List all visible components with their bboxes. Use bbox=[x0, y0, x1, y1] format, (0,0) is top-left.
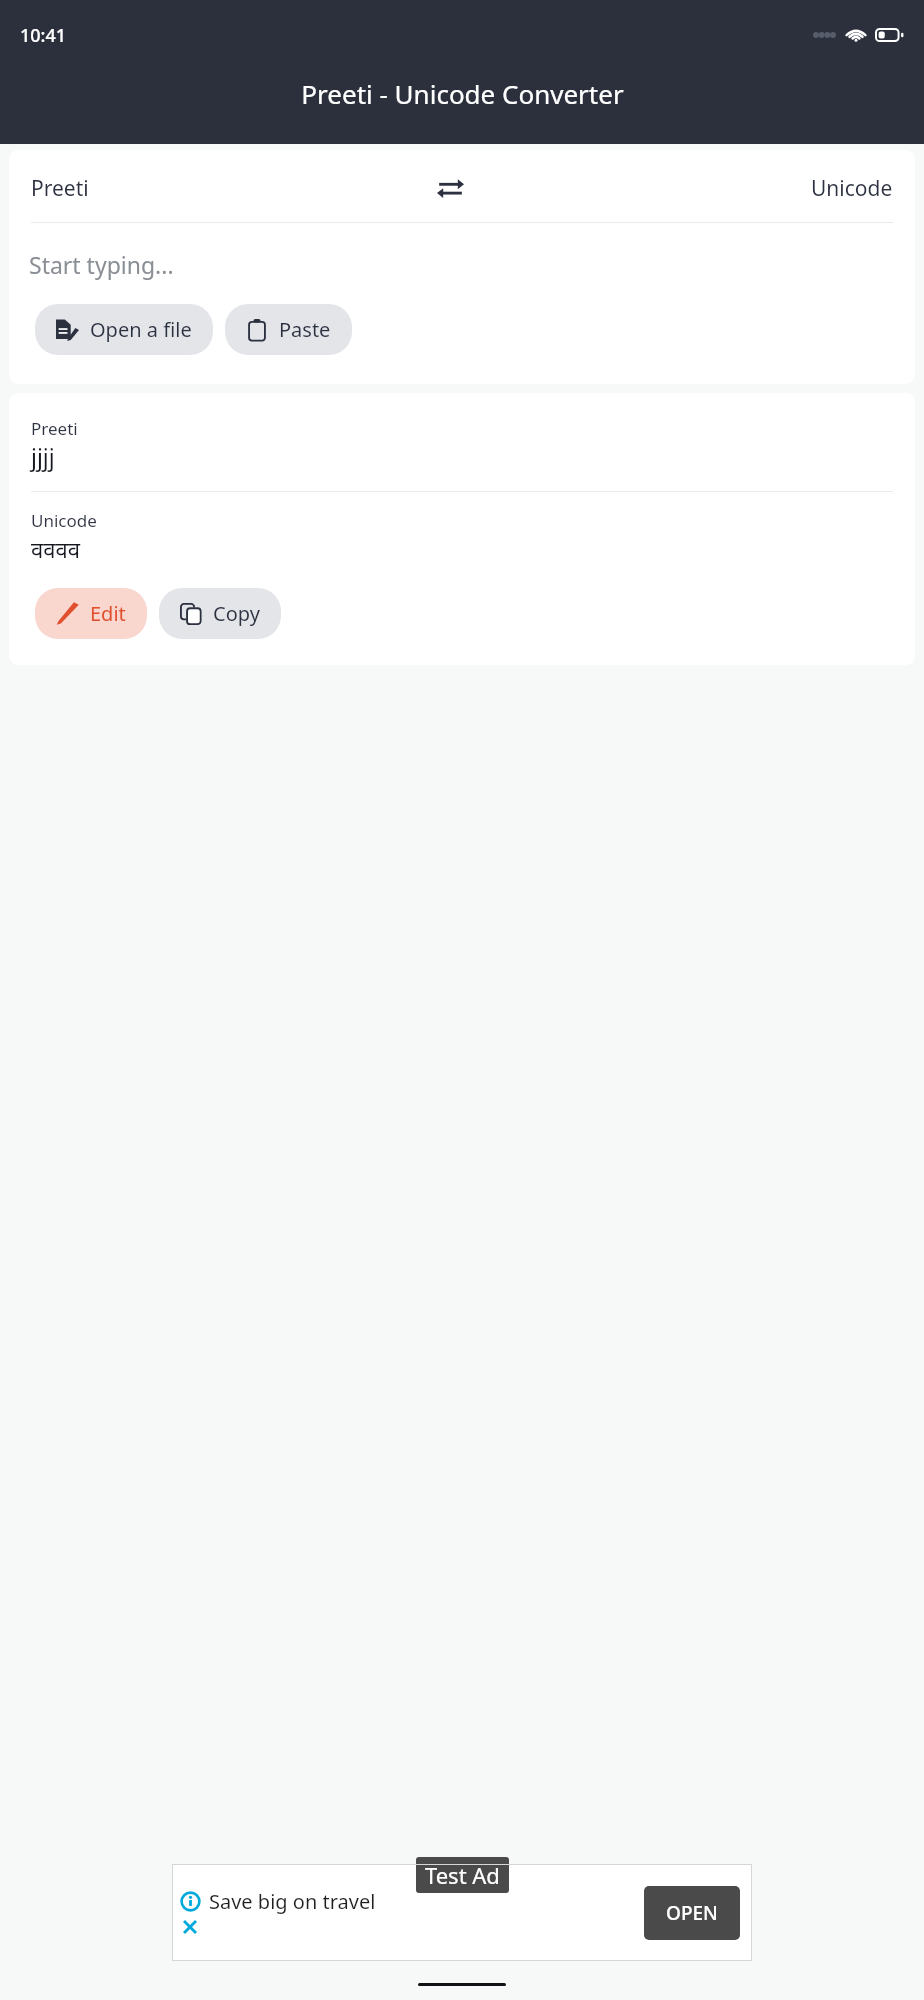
staticText: Start typing... bbox=[29, 249, 174, 280]
staticText: Open a file bbox=[90, 316, 192, 343]
staticText: Unicode bbox=[31, 509, 97, 532]
staticText: Edit bbox=[90, 600, 126, 627]
staticText: jjjj bbox=[31, 441, 55, 472]
button[interactable]: OPEN bbox=[644, 1886, 740, 1940]
staticText: 10:41 bbox=[20, 23, 67, 48]
staticText: Test Ad bbox=[425, 1860, 500, 1890]
button[interactable]: Start typing... bbox=[9, 249, 915, 284]
staticText: Preeti - Unicode Converter bbox=[301, 76, 624, 111]
staticText: Copy bbox=[213, 600, 260, 627]
button[interactable]: Copy bbox=[159, 588, 281, 639]
staticText: वववव bbox=[31, 534, 80, 564]
button[interactable]: Swap conversion direction bbox=[429, 167, 471, 209]
button[interactable]: Paste bbox=[225, 304, 352, 355]
button[interactable]: Edit bbox=[35, 588, 147, 639]
staticText: OPEN bbox=[666, 1900, 718, 1926]
staticText: Paste bbox=[279, 316, 331, 343]
button[interactable]: Save big on travel bbox=[172, 1864, 752, 1961]
staticText: Save big on travel bbox=[209, 1888, 376, 1915]
button[interactable]: Open a file bbox=[35, 304, 213, 355]
staticText: Preeti bbox=[31, 417, 78, 440]
staticText: Unicode bbox=[811, 174, 893, 203]
staticText: Preeti bbox=[31, 174, 89, 203]
